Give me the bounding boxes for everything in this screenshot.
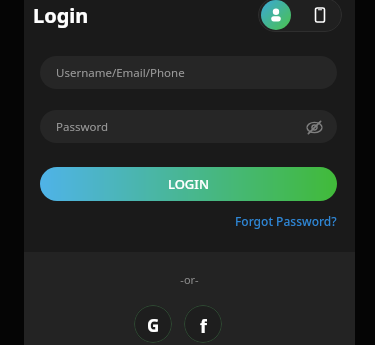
- button[interactable]: Forgot Password?: [235, 213, 337, 229]
- staticText: LOGIN: [168, 175, 210, 193]
- button[interactable]: Social sign in: [134, 305, 172, 343]
- button[interactable]: LOGIN: [40, 167, 337, 201]
- staticText: Login: [33, 2, 89, 29]
- staticText: Username/Email/Phone: [56, 65, 185, 81]
- button[interactable]: Password: [40, 110, 337, 143]
- button[interactable]: Username/Email/Phone: [40, 56, 337, 89]
- button[interactable]: Social sign in: [184, 305, 222, 343]
- staticText: -or-: [24, 272, 355, 287]
- staticText: Password: [56, 119, 109, 135]
- button[interactable]: Switch login method: [258, 0, 342, 32]
- button[interactable]: Show password: [303, 116, 325, 138]
- staticText: G: [147, 314, 160, 334]
- staticText: f: [200, 314, 207, 334]
